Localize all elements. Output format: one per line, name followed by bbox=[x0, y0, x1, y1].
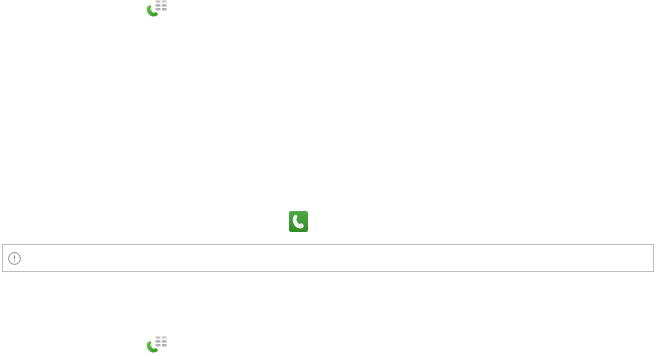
button[interactable]: Phone dialer bbox=[146, 0, 167, 18]
button[interactable]: Phone app bbox=[289, 211, 308, 232]
button[interactable]: Phone dialer bbox=[146, 336, 167, 354]
button[interactable] bbox=[2, 244, 654, 272]
